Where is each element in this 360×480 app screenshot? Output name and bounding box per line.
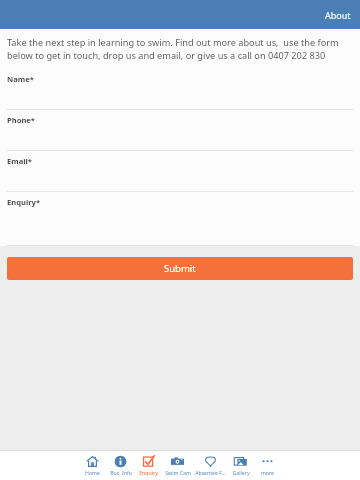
button[interactable]: Absentee F... bbox=[193, 455, 227, 476]
button[interactable]: Home bbox=[79, 455, 106, 476]
button[interactable]: About bbox=[316, 5, 360, 25]
staticText: Enquiry* bbox=[7, 197, 41, 207]
staticText: Phone* bbox=[7, 115, 35, 125]
button[interactable]: Gallery bbox=[227, 455, 254, 476]
button[interactable]: Name* bbox=[0, 69, 360, 110]
button[interactable]: Swim Cam bbox=[162, 455, 193, 476]
button[interactable]: Bus. Info bbox=[106, 455, 135, 476]
button[interactable]: Email* bbox=[0, 151, 360, 192]
staticText: Absentee F... bbox=[195, 469, 226, 476]
button[interactable]: Enquiry bbox=[135, 455, 162, 476]
button[interactable]: Enquiry* bbox=[0, 192, 360, 246]
staticText: Take the next step in learning to swim. … bbox=[7, 36, 353, 62]
staticText: Email* bbox=[7, 156, 32, 166]
button[interactable]: more bbox=[254, 455, 281, 476]
staticText: Gallery bbox=[232, 469, 250, 476]
button[interactable]: Submit bbox=[7, 257, 353, 280]
staticText: Name* bbox=[7, 74, 34, 84]
staticText: Bus. Info bbox=[110, 469, 132, 476]
staticText: About bbox=[325, 9, 351, 21]
staticText: more bbox=[261, 469, 274, 476]
staticText: Submit bbox=[164, 262, 196, 275]
staticText: Enquiry bbox=[139, 469, 158, 476]
staticText: Home bbox=[85, 469, 100, 476]
button[interactable]: Phone* bbox=[0, 110, 360, 151]
staticText: Swim Cam bbox=[165, 469, 191, 476]
